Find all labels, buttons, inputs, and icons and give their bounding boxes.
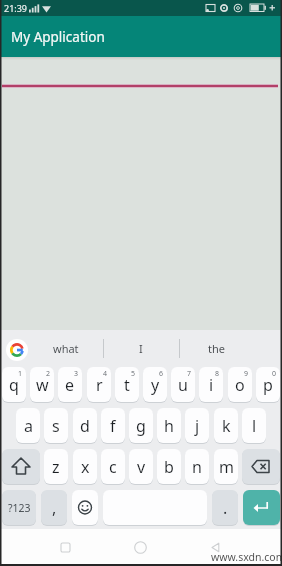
staticText: i (209, 374, 214, 396)
staticText: c (109, 456, 117, 478)
button[interactable]: a (16, 408, 40, 443)
button[interactable]: h (157, 408, 181, 443)
staticText: l (252, 415, 257, 437)
staticText: a (24, 415, 33, 437)
button[interactable]: ?123 (2, 490, 36, 525)
button[interactable]: My Application (0, 16, 282, 57)
button[interactable]: the (180, 330, 252, 367)
button[interactable]: b (157, 449, 181, 484)
staticText: 6 (159, 369, 164, 379)
button[interactable]: i (199, 367, 223, 402)
staticText: y (151, 374, 160, 396)
button[interactable]: . (212, 490, 238, 525)
staticText: 1 (18, 369, 23, 379)
button[interactable] (2, 449, 40, 484)
staticText: z (52, 456, 60, 478)
button[interactable]: p (256, 367, 280, 402)
button[interactable]: m (214, 449, 238, 484)
staticText: what (53, 341, 79, 356)
staticText: I (139, 341, 143, 356)
button[interactable]: k (214, 408, 238, 443)
staticText: 5 (131, 369, 136, 379)
staticText: 3 (74, 369, 79, 379)
button[interactable]: s (44, 408, 68, 443)
button[interactable]: f (101, 408, 125, 443)
button[interactable] (242, 449, 280, 484)
staticText: b (164, 456, 174, 478)
button[interactable]: x (73, 449, 97, 484)
staticText: My Application (11, 28, 105, 46)
button[interactable]: g (129, 408, 153, 443)
staticText: j (195, 415, 200, 437)
staticText: 4 (103, 369, 108, 379)
staticText: e (65, 374, 75, 396)
staticText: 7 (187, 369, 192, 379)
button[interactable]: q (2, 367, 26, 402)
button[interactable]: , (41, 490, 67, 525)
staticText: 0 (272, 369, 277, 379)
staticText: d (80, 415, 90, 437)
button[interactable]: e (58, 367, 82, 402)
staticText: , (52, 497, 57, 519)
staticText: t (124, 374, 130, 396)
button[interactable]: n (185, 449, 209, 484)
staticText: n (192, 456, 202, 478)
staticText: 9 (244, 369, 249, 379)
button[interactable]: o (228, 367, 252, 402)
staticText: g (136, 415, 146, 437)
staticText: q (9, 374, 19, 396)
staticText: w (36, 374, 49, 396)
button[interactable]: u (171, 367, 195, 402)
button[interactable]: l (242, 408, 266, 443)
staticText: k (222, 415, 231, 437)
staticText: h (164, 415, 174, 437)
button[interactable]: j (185, 408, 209, 443)
staticText: v (137, 456, 146, 478)
staticText: x (81, 456, 90, 478)
button[interactable] (203, 535, 227, 559)
staticText: f (110, 415, 116, 437)
staticText: p (263, 374, 273, 396)
button[interactable]: y (143, 367, 167, 402)
staticText: m (219, 456, 234, 478)
staticText: . (223, 497, 228, 519)
button[interactable]: d (73, 408, 97, 443)
staticText: s (52, 415, 60, 437)
button[interactable] (243, 490, 280, 525)
button[interactable] (72, 490, 98, 525)
button[interactable]: t (115, 367, 139, 402)
staticText: o (235, 374, 245, 396)
staticText: 21:39 (4, 2, 28, 14)
button[interactable]: v (129, 449, 153, 484)
button[interactable]: z (44, 449, 68, 484)
staticText: r (96, 374, 103, 396)
button[interactable]: w (30, 367, 54, 402)
staticText: www.sxdn.com (211, 550, 282, 564)
button[interactable]: r (87, 367, 111, 402)
staticText: 2 (46, 369, 51, 379)
staticText: ?123 (8, 501, 31, 515)
staticText: 8 (215, 369, 220, 379)
button[interactable] (53, 535, 77, 559)
staticText: the (208, 341, 225, 356)
button[interactable] (6, 339, 28, 361)
button[interactable]: what (30, 330, 102, 367)
button[interactable] (128, 535, 152, 559)
staticText: u (178, 374, 188, 396)
button[interactable]: c (101, 449, 125, 484)
button[interactable]: I (104, 330, 178, 367)
